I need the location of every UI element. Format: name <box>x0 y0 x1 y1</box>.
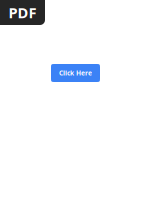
button[interactable]: Click Here <box>51 64 100 82</box>
staticText: Click Here <box>59 69 92 77</box>
staticText: PDF <box>8 3 36 22</box>
